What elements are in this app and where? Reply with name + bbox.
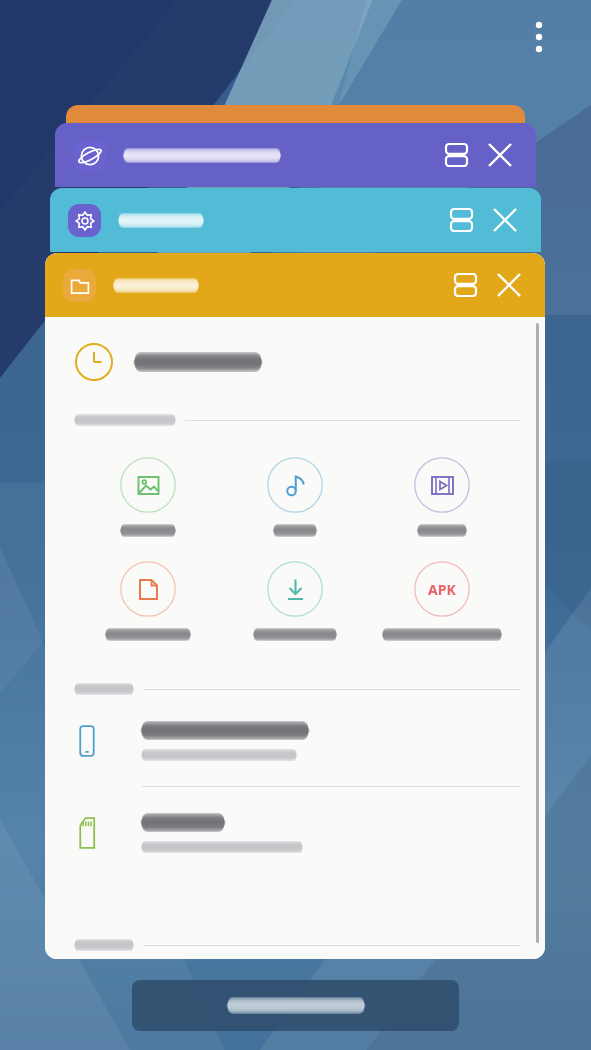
button[interactable]: Open Settings in split screen view	[439, 198, 483, 242]
button[interactable]	[45, 695, 545, 786]
button[interactable]	[66, 105, 525, 145]
button[interactable]	[75, 343, 525, 381]
button[interactable]: Close My Files	[487, 263, 531, 307]
button[interactable]	[132, 980, 459, 1031]
staticText: APK	[428, 580, 456, 599]
button[interactable]: APK	[382, 561, 502, 641]
button[interactable]	[235, 561, 355, 641]
button[interactable]	[88, 561, 208, 641]
button[interactable]: Open Settings in split screen view	[50, 188, 541, 252]
button[interactable]	[45, 787, 545, 878]
button[interactable]: Close Samsung Internet	[478, 133, 522, 177]
button[interactable]: Open My Files in split screen view	[45, 253, 545, 317]
button[interactable]: Open Samsung Internet in split screen vi…	[55, 123, 536, 187]
button[interactable]: Open Samsung Internet in split screen vi…	[434, 133, 478, 177]
button[interactable]: Close Settings	[483, 198, 527, 242]
button[interactable]	[88, 457, 208, 537]
button[interactable]	[235, 457, 355, 537]
button[interactable]: Open My Files in split screen view	[443, 263, 487, 307]
button[interactable]: More options	[516, 14, 562, 60]
button[interactable]	[382, 457, 502, 537]
